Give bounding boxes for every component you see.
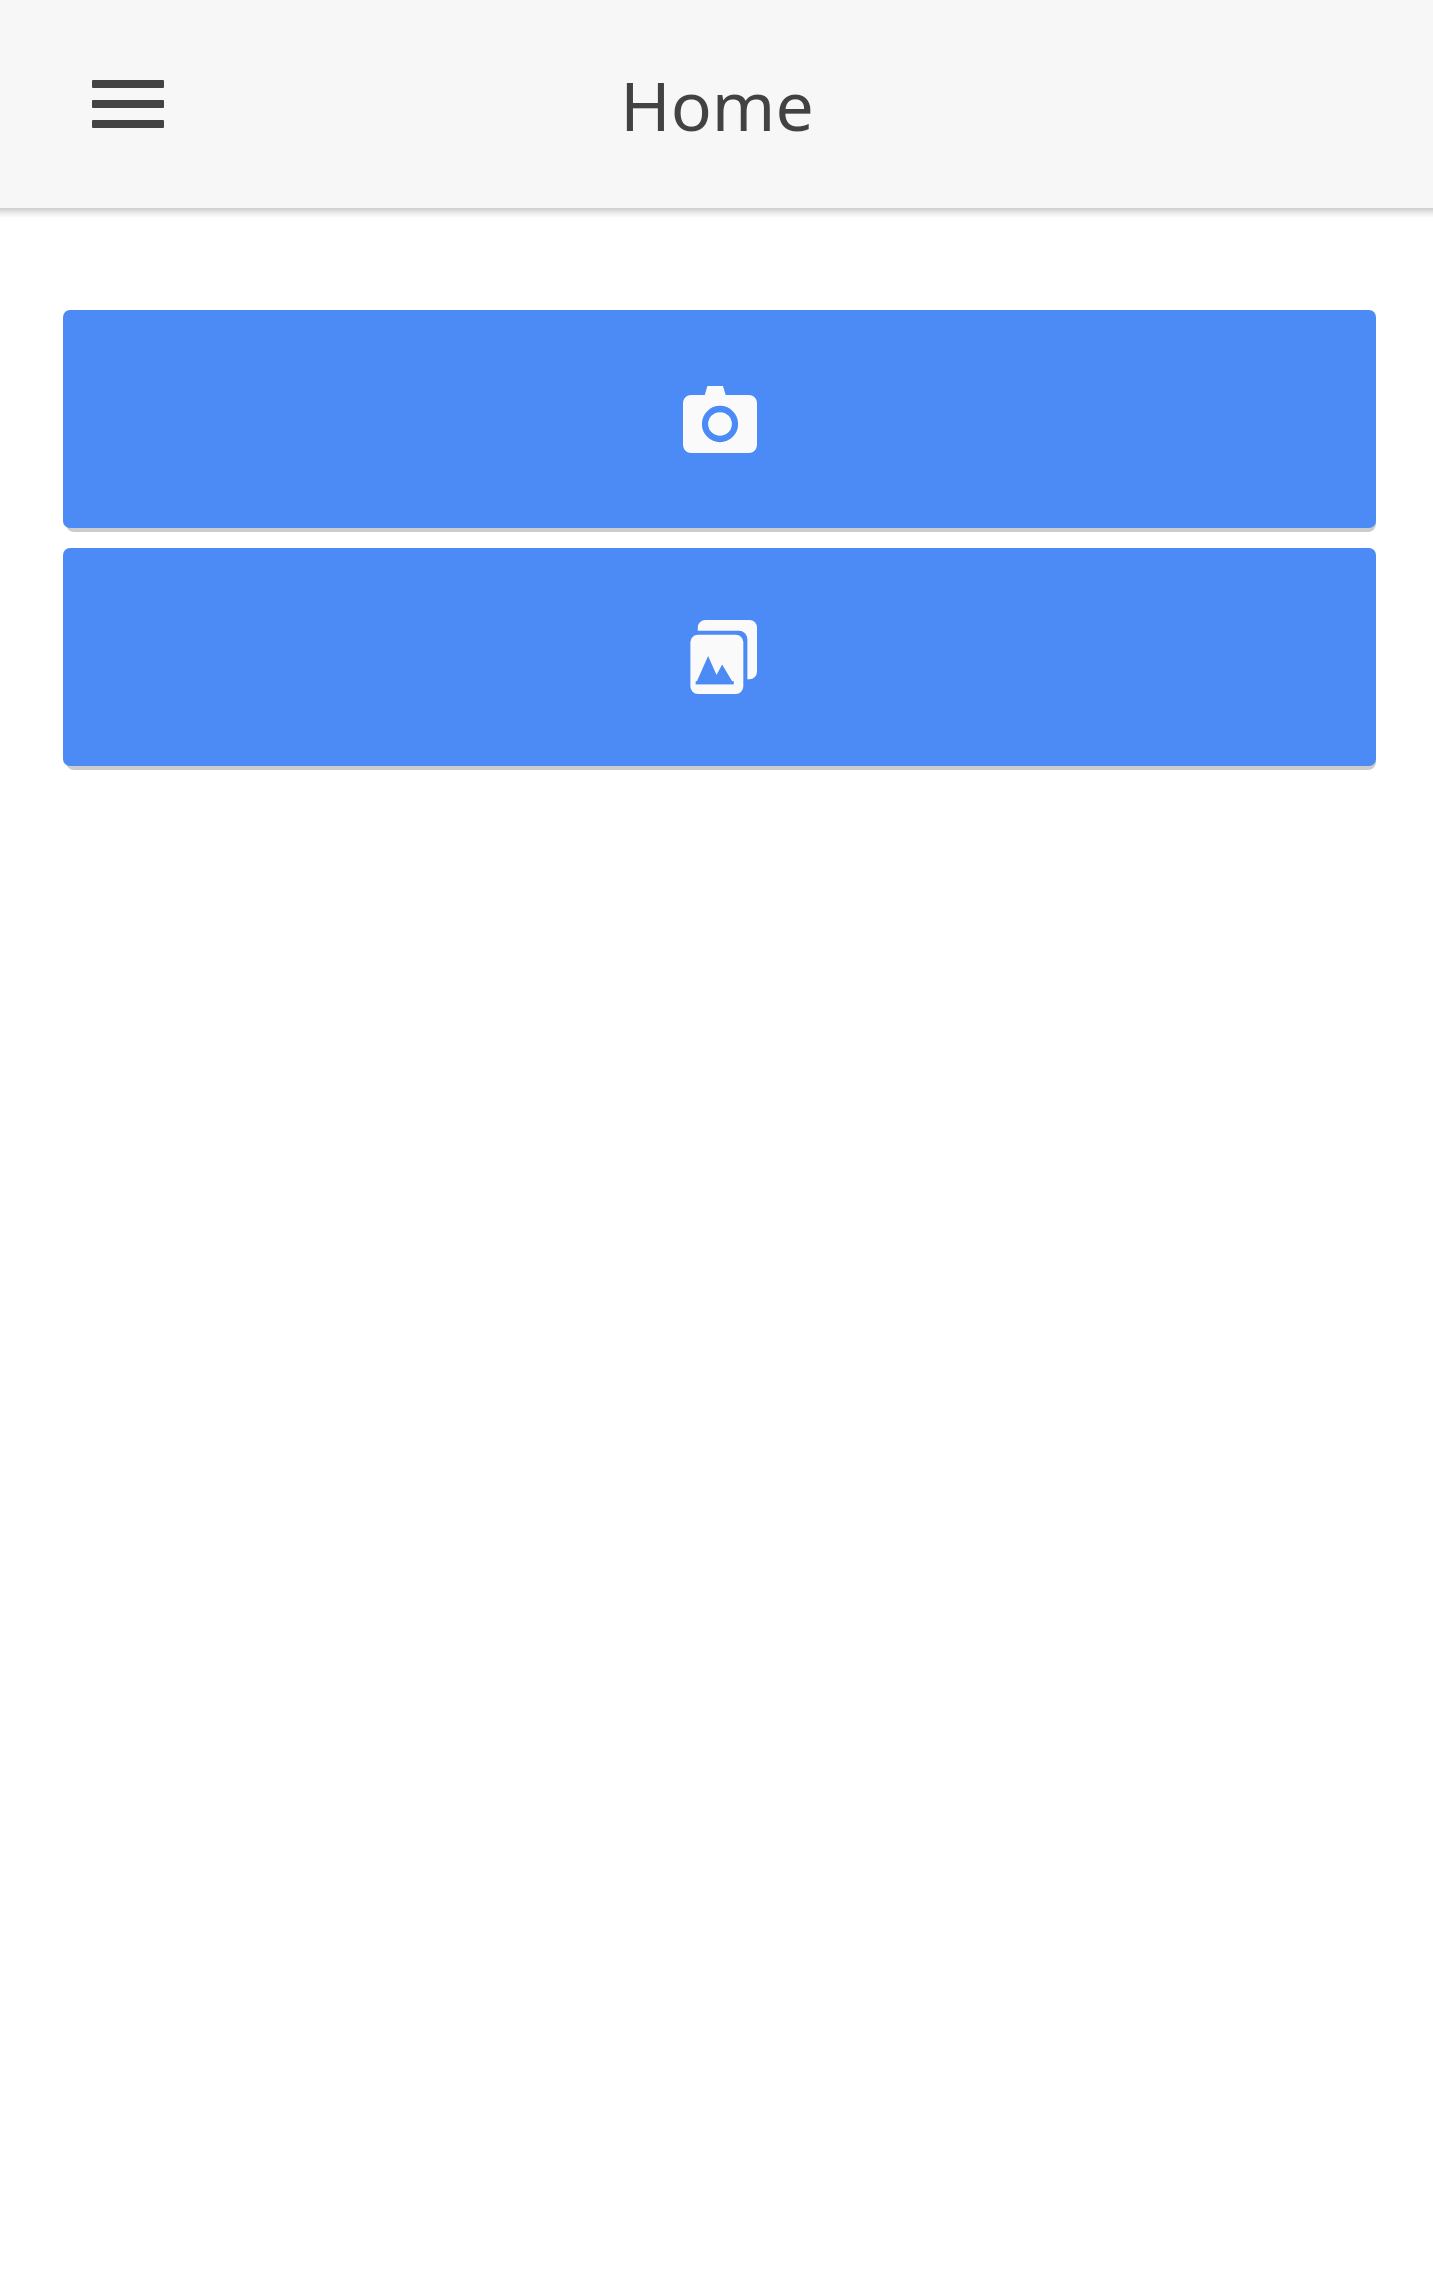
staticText: Home [620, 58, 814, 151]
button[interactable]: Take a photo [63, 310, 1376, 528]
button[interactable]: Open navigation menu [48, 24, 208, 184]
button[interactable]: Choose from gallery [63, 548, 1376, 766]
